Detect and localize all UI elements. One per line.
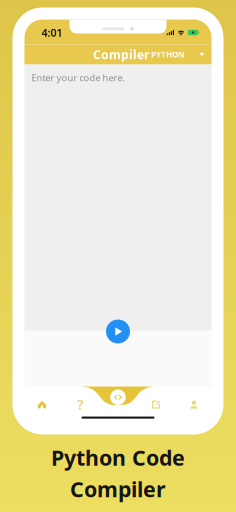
button[interactable]: Help	[65, 393, 95, 415]
staticText: Compiler	[70, 475, 166, 503]
staticText: Compiler	[93, 46, 149, 62]
staticText: PYTHON	[151, 49, 185, 60]
staticText: Enter your code here.	[31, 71, 125, 84]
button[interactable]: Compiler	[81, 386, 155, 405]
button[interactable]: PYTHON	[145, 44, 211, 65]
button[interactable]: Profile	[179, 393, 209, 415]
staticText: ?	[77, 396, 83, 413]
staticText: Python Code	[51, 443, 185, 472]
button[interactable]: Notes	[141, 393, 171, 415]
button[interactable]: Run	[106, 319, 130, 343]
button[interactable]: Home	[27, 393, 57, 415]
staticText: 4:01	[41, 25, 62, 40]
